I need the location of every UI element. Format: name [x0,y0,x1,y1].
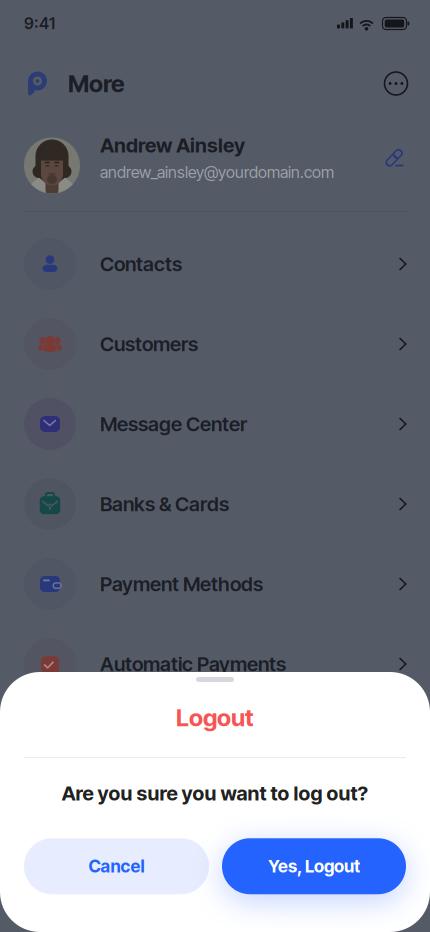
button[interactable]: Yes, Logout [222,838,406,894]
staticText: Yes, Logout [268,856,360,877]
staticText: andrew_ainsley@yourdomain.com [100,162,334,182]
button[interactable]: Message Center [0,384,430,464]
button[interactable]: Automatic Payments [0,624,430,704]
staticText: Payment Methods [100,572,263,596]
staticText: Are you sure you want to log out? [61,781,368,805]
staticText: Message Center [100,412,247,436]
button[interactable]: Banks & Cards [0,464,430,544]
button[interactable]: Andrew Ainsley [0,120,430,211]
staticText: 9:41 [24,14,55,33]
staticText: Andrew Ainsley [100,133,245,157]
staticText: Logout [176,703,254,732]
staticText: More [68,69,125,98]
button[interactable]: Customers [0,304,430,384]
button[interactable]: More options [382,69,410,97]
button[interactable]: Cancel [24,838,209,894]
button[interactable]: Contacts [0,224,430,304]
staticText: Automatic Payments [100,652,286,676]
staticText: Banks & Cards [100,492,229,516]
staticText: Contacts [100,252,182,276]
staticText: Cancel [88,856,144,877]
staticText: Customers [100,332,198,356]
button[interactable]: Payment Methods [0,544,430,624]
